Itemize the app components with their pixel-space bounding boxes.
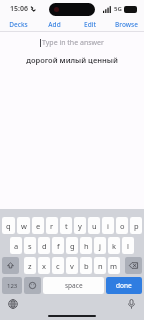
button[interactable]: Decks	[0, 18, 36, 31]
staticText: e	[36, 221, 41, 231]
button[interactable]: Browse	[108, 18, 144, 31]
staticText: d	[42, 241, 47, 251]
button[interactable]: space	[43, 277, 104, 294]
button[interactable]: Dictation	[124, 297, 138, 311]
button[interactable]: n	[94, 257, 106, 274]
button[interactable]: l	[122, 237, 134, 254]
staticText: v	[70, 261, 74, 271]
button[interactable]: u	[88, 217, 100, 234]
staticText: g	[70, 241, 75, 251]
staticText: Decks	[9, 20, 28, 29]
button[interactable]: Change keyboard language	[6, 297, 20, 311]
staticText: a	[14, 241, 19, 251]
button[interactable]: h	[80, 237, 92, 254]
button[interactable]: p	[130, 217, 142, 234]
staticText: Type in the answer	[42, 38, 104, 48]
staticText: c	[56, 261, 60, 271]
button[interactable]: i	[102, 217, 114, 234]
staticText: o	[120, 221, 125, 231]
staticText: done	[116, 281, 132, 290]
button[interactable]: Shift	[2, 257, 19, 274]
button[interactable]: t	[60, 217, 72, 234]
staticText: x	[42, 261, 46, 271]
button[interactable]: r	[46, 217, 58, 234]
button[interactable]: z	[24, 257, 36, 274]
staticText: h	[84, 241, 89, 251]
staticText: b	[84, 261, 89, 271]
staticText: l	[127, 241, 129, 251]
button[interactable]: 123	[2, 277, 22, 294]
button[interactable]: d	[38, 237, 50, 254]
staticText: z	[28, 261, 32, 271]
staticText: Edit	[84, 20, 96, 29]
staticText: j	[99, 241, 101, 251]
button[interactable]: e	[32, 217, 44, 234]
button[interactable]: f	[52, 237, 64, 254]
button[interactable]: q	[2, 217, 15, 234]
staticText: 5G	[114, 5, 122, 13]
button[interactable]: Add	[36, 18, 72, 31]
staticText: m	[110, 261, 118, 271]
staticText: Browse	[115, 20, 138, 29]
staticText: s	[28, 241, 32, 251]
button[interactable]: Backspace	[125, 257, 142, 274]
button[interactable]: v	[66, 257, 78, 274]
button[interactable]: x	[38, 257, 50, 274]
button[interactable]: s	[24, 237, 36, 254]
button[interactable]: y	[74, 217, 86, 234]
button[interactable]: w	[17, 217, 30, 234]
button[interactable]: done	[106, 277, 142, 294]
button[interactable]: Type in the answer	[0, 37, 144, 49]
button[interactable]: k	[108, 237, 120, 254]
staticText: f	[57, 241, 60, 251]
staticText: y	[78, 221, 82, 231]
staticText: n	[98, 261, 103, 271]
staticText: t	[65, 221, 68, 231]
staticText: u	[92, 221, 97, 231]
button[interactable]: b	[80, 257, 92, 274]
button[interactable]: g	[66, 237, 78, 254]
button[interactable]: j	[94, 237, 106, 254]
button[interactable]: o	[116, 217, 128, 234]
staticText: r	[50, 221, 54, 231]
staticText: w	[21, 221, 27, 231]
staticText: 15:06	[10, 4, 28, 14]
staticText: 123	[7, 282, 18, 290]
staticText: дорогой милый ценный	[26, 55, 118, 65]
staticText: i	[107, 221, 109, 231]
button[interactable]: m	[108, 257, 120, 274]
button[interactable]: Emoji	[24, 277, 41, 294]
staticText: space	[65, 281, 83, 290]
staticText: Add	[48, 20, 61, 29]
staticText: p	[134, 221, 139, 231]
button[interactable]: c	[52, 257, 64, 274]
button[interactable]: a	[10, 237, 22, 254]
staticText: q	[6, 221, 11, 231]
staticText: k	[112, 241, 117, 251]
button[interactable]: Edit	[72, 18, 108, 31]
